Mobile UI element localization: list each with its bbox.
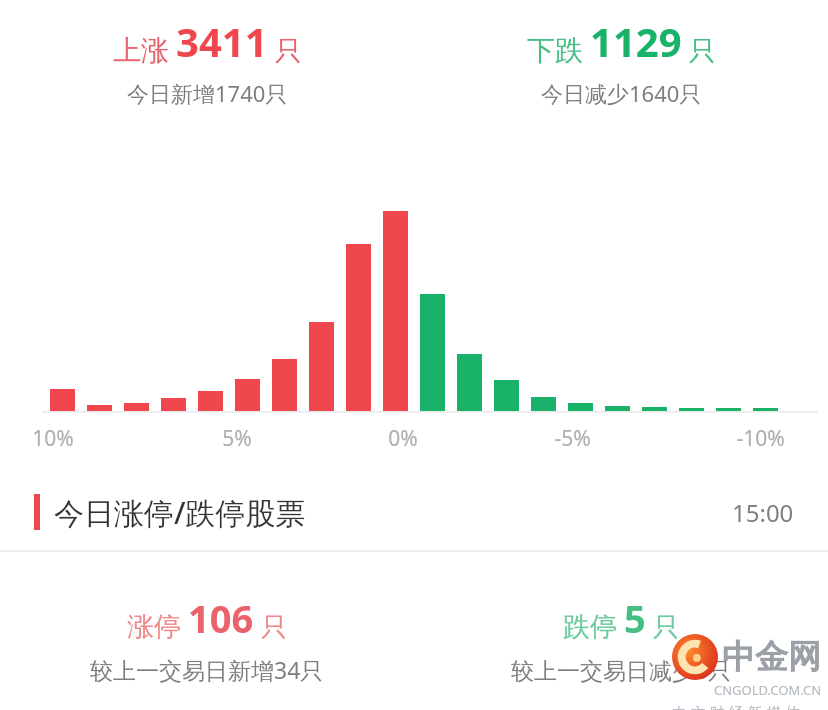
staticText: -10% — [736, 424, 785, 453]
staticText: 只 — [689, 34, 716, 68]
staticText: 5% — [222, 424, 252, 453]
staticText: 15:00 — [732, 496, 794, 529]
staticText: 只 — [653, 611, 679, 644]
staticText: CNGOLD.COM.CN — [714, 681, 822, 699]
button[interactable]: 涨停 — [0, 592, 414, 685]
other: 中金网 watermark — [672, 634, 822, 710]
staticText: 较上一交易日减少3只 — [511, 654, 732, 685]
staticText: 106 — [188, 592, 254, 644]
staticText: 今日新增1740只 — [127, 78, 288, 108]
staticText: 上涨 — [113, 33, 169, 68]
staticText: 3411 — [176, 14, 268, 68]
staticText: 0% — [388, 424, 418, 453]
staticText: 涨停 — [127, 610, 181, 644]
staticText: 中 文 财 经 新 媒 体 — [672, 702, 801, 710]
button[interactable]: 下跌 — [414, 14, 828, 108]
staticText: -5% — [554, 424, 591, 453]
staticText: 1129 — [590, 14, 682, 68]
staticText: 只 — [261, 611, 287, 644]
button[interactable]: 跌停 — [414, 592, 828, 685]
staticText: 5 — [624, 592, 646, 644]
staticText: 下跌 — [527, 33, 583, 68]
button[interactable]: 上涨 — [0, 14, 414, 108]
staticText: 10% — [32, 424, 74, 453]
staticText: 今日减少1640只 — [541, 78, 702, 108]
staticText: 跌停 — [563, 610, 617, 644]
staticText: 中金网 — [722, 636, 821, 678]
staticText: 较上一交易日新增34只 — [90, 654, 324, 685]
staticText: 只 — [275, 34, 302, 68]
staticText: 今日涨停/跌停股票 — [54, 492, 306, 533]
button[interactable]: 今日涨停/跌停股票 — [0, 474, 828, 550]
